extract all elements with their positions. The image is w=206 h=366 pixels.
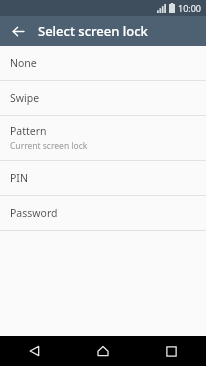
staticText: PIN: [10, 171, 28, 185]
staticText: Current screen lock: [10, 140, 88, 152]
button[interactable]: Back: [0, 336, 68, 366]
button[interactable]: PIN: [0, 161, 206, 195]
staticText: Password: [10, 206, 58, 220]
staticText: Select screen lock: [38, 22, 148, 40]
button[interactable]: None: [0, 46, 206, 80]
button[interactable]: Pattern: [0, 116, 206, 160]
staticText: 10:00: [178, 2, 202, 14]
button[interactable]: Password: [0, 196, 206, 230]
button[interactable]: Recent apps: [137, 336, 206, 366]
staticText: None: [10, 56, 37, 70]
button[interactable]: Navigate up: [6, 19, 30, 43]
button[interactable]: Home: [68, 336, 137, 366]
staticText: Swipe: [10, 91, 40, 105]
button[interactable]: Swipe: [0, 81, 206, 115]
staticText: Pattern: [10, 124, 47, 138]
